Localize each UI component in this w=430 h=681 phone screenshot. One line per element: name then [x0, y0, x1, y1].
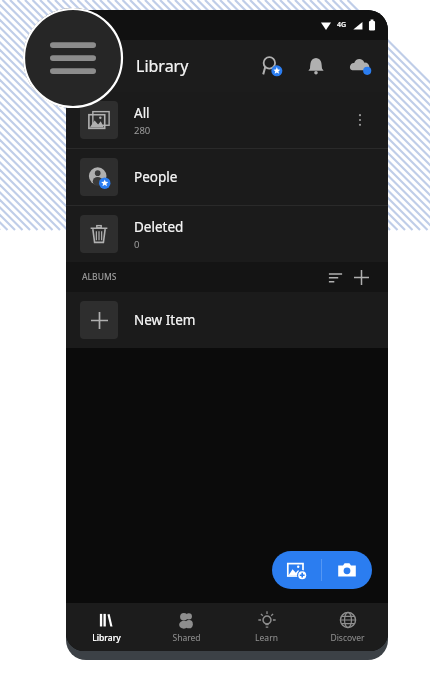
button[interactable]: Add photo: [272, 551, 321, 589]
button[interactable]: People: [66, 149, 388, 205]
button[interactable]: Discover: [307, 603, 388, 651]
button[interactable]: Shared: [146, 603, 226, 651]
staticText: 0: [134, 238, 140, 251]
button[interactable]: Cloud sync: [346, 52, 374, 80]
staticText: 4G: [337, 20, 347, 30]
staticText: Learn: [255, 632, 278, 644]
staticText: New Item: [134, 311, 196, 329]
button[interactable]: New Item: [66, 292, 388, 348]
staticText: ALBUMS: [82, 271, 117, 283]
button[interactable]: More options: [346, 106, 374, 134]
staticText: Library: [92, 632, 121, 644]
staticText: Deleted: [134, 218, 184, 236]
staticText: All: [134, 104, 150, 122]
button[interactable]: Deleted: [66, 206, 388, 262]
staticText: Library: [136, 55, 189, 77]
button[interactable]: Add album: [348, 264, 374, 290]
button[interactable]: Search: [258, 52, 286, 80]
staticText: Shared: [172, 632, 201, 644]
staticText: 280: [134, 124, 151, 137]
button[interactable]: Library: [66, 603, 146, 651]
staticText: People: [134, 168, 178, 186]
button[interactable]: Learn: [226, 603, 307, 651]
staticText: Discover: [330, 632, 365, 644]
button[interactable]: Sort: [322, 264, 348, 290]
button[interactable]: Camera: [322, 551, 372, 589]
button[interactable]: Notifications: [302, 52, 330, 80]
button[interactable]: All: [66, 92, 388, 148]
